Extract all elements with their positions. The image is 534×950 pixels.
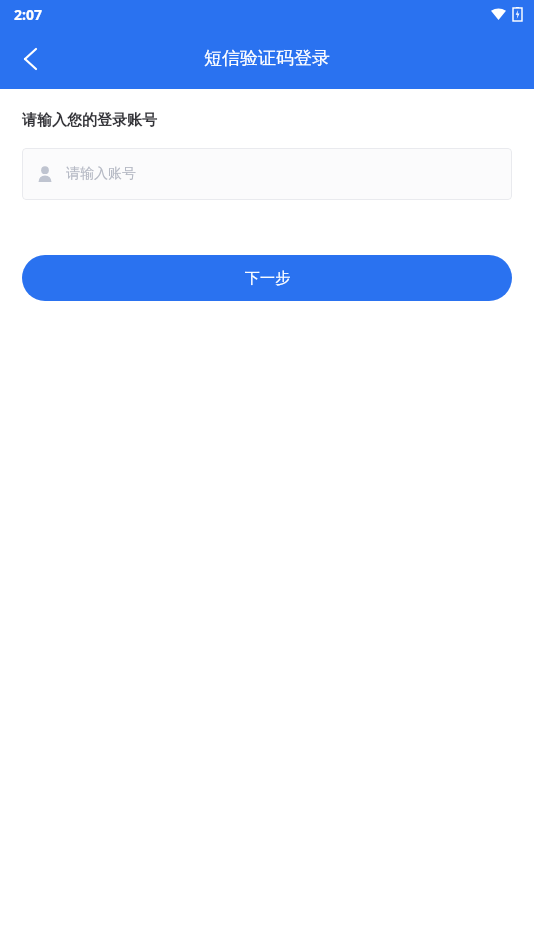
staticText: 下一步 — [245, 269, 290, 288]
button[interactable]: 请输入账号 — [22, 148, 512, 200]
staticText: 2:07 — [14, 5, 42, 24]
button[interactable]: 下一步 — [22, 255, 512, 301]
staticText: 短信验证码登录 — [204, 47, 330, 70]
button[interactable]: Back — [6, 35, 54, 83]
staticText: 请输入账号 — [66, 165, 136, 183]
staticText: 请输入您的登录账号 — [22, 111, 157, 130]
